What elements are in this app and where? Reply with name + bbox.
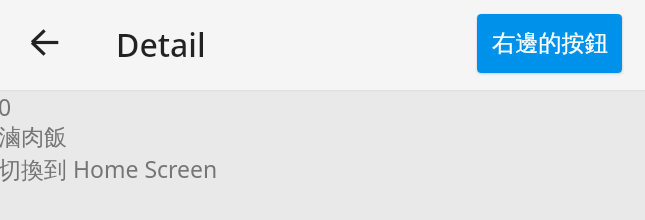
- staticText: 右邊的按鈕: [492, 29, 608, 58]
- staticText: Detail: [116, 23, 206, 67]
- staticText: 0 滷肉飯 切換到 Home Screen: [0, 91, 218, 184]
- button[interactable]: Back: [14, 13, 74, 73]
- button[interactable]: 右邊的按鈕: [477, 14, 622, 73]
